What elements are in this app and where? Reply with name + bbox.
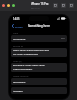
button[interactable]: Command	[11, 35, 67, 42]
button[interactable]: Reconnect	[11, 78, 67, 85]
button[interactable]: Zoom	[12, 4, 15, 7]
staticText: DEVICE ID	[13, 45, 23, 48]
staticText: Reconnect	[13, 80, 26, 83]
staticText: Command	[13, 37, 26, 40]
button[interactable]: Close	[2, 4, 5, 7]
staticText: cg-8765-81a09ca1p3	[13, 53, 65, 56]
staticText: iOS 17.0	[31, 7, 40, 10]
staticText: INFO	[13, 32, 19, 35]
button[interactable]: Screenshot	[61, 3, 66, 8]
button[interactable]: Rotate	[53, 3, 58, 8]
staticText: LOGS (4)	[13, 60, 22, 63]
staticText: iPhone 15 Pro	[31, 2, 49, 6]
button[interactable]: Manage	[11, 87, 67, 94]
staticText: a9a8-8E7D-936f1cae7a48-d3a	[13, 49, 65, 52]
staticText: Something here	[28, 24, 50, 28]
staticText: C4B6179C839DD1	[13, 68, 65, 71]
staticText: MORE ACTIONS	[13, 75, 29, 78]
staticText: Profile	[15, 25, 23, 28]
button[interactable]: 0A12B9F5-8705-2B4D-9E35	[11, 63, 67, 72]
staticText: 0x0	[61, 37, 65, 40]
button[interactable]: Minimize	[7, 4, 10, 7]
button[interactable]: Profile	[11, 23, 24, 29]
button[interactable]: a9a8-8E7D-936f1cae7a48-d3a	[11, 48, 67, 57]
staticText: 14:35	[13, 17, 20, 20]
staticText: Manage	[13, 89, 23, 92]
button[interactable]: More options	[69, 3, 74, 8]
staticText: 0A12B9F5-8705-2B4D-9E35	[13, 64, 65, 67]
